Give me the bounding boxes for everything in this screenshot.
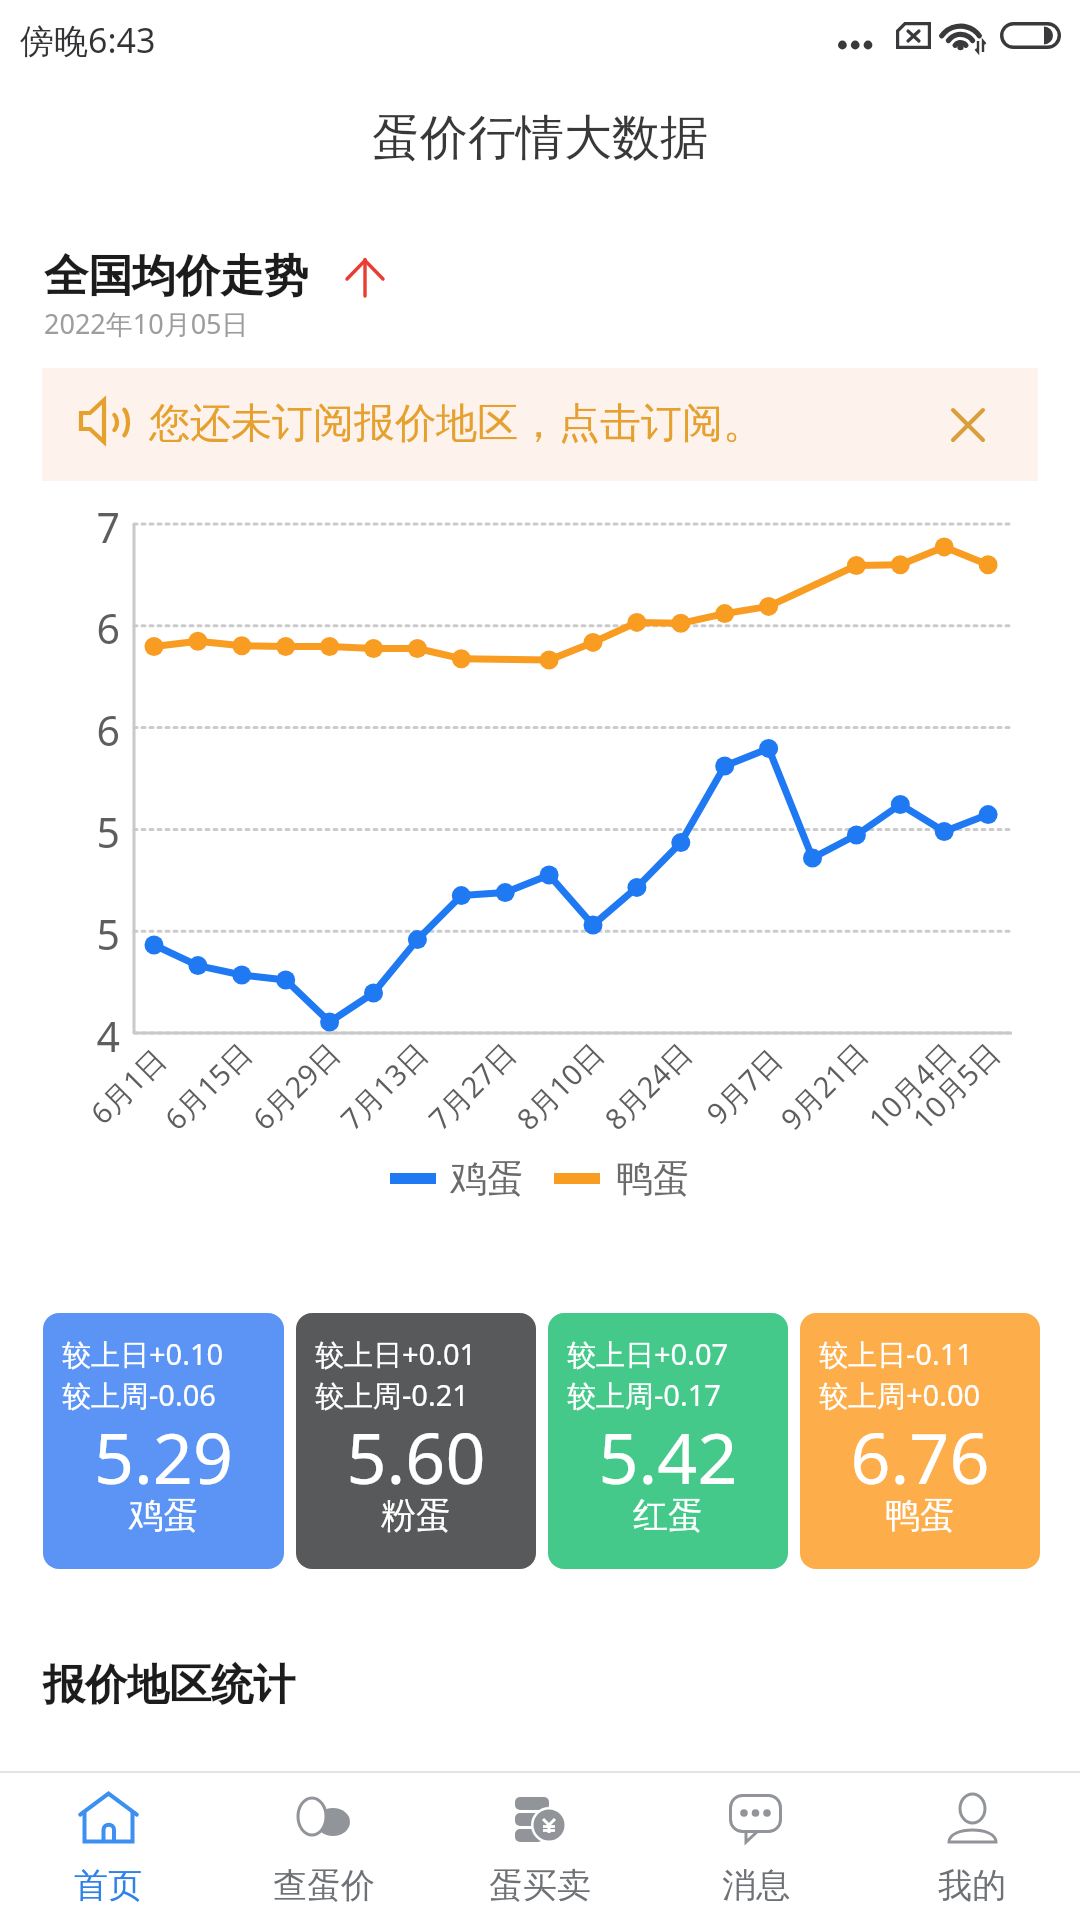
staticText: 10月4日: [860, 1034, 964, 1138]
staticText: 较上周-0.17: [567, 1375, 721, 1415]
staticText: 查蛋价: [273, 1864, 375, 1907]
button[interactable]: 较上日+0.07: [548, 1313, 788, 1569]
staticText: 9月21日: [772, 1034, 876, 1138]
button[interactable]: 蛋买卖: [432, 1773, 648, 1907]
staticText: 5: [76, 804, 120, 860]
staticText: 8月24日: [596, 1034, 700, 1138]
staticText: 6: [76, 600, 120, 656]
staticText: 较上日-0.11: [819, 1334, 973, 1374]
button[interactable]: 查蛋价: [216, 1773, 432, 1907]
staticText: 6: [76, 702, 120, 758]
button[interactable]: 较上日-0.11: [800, 1313, 1040, 1569]
staticText: 蛋价行情大数据: [372, 108, 708, 168]
staticText: 5.42: [548, 1409, 788, 1504]
staticText: 较上周+0.00: [819, 1375, 981, 1415]
staticText: 6月15日: [156, 1034, 260, 1138]
staticText: 8月10日: [508, 1034, 612, 1138]
staticText: 9月7日: [697, 1039, 791, 1133]
staticText: 2022年10月05日: [44, 305, 249, 342]
button[interactable]: 我的: [864, 1773, 1080, 1907]
staticText: 我的: [938, 1864, 1006, 1907]
staticText: 较上周-0.06: [62, 1375, 216, 1415]
staticText: 5.60: [296, 1409, 536, 1504]
staticText: 报价地区统计: [43, 1659, 295, 1712]
staticText: 您还未订阅报价地区，点击订阅。: [149, 398, 764, 450]
staticText: 鸭蛋: [800, 1493, 1040, 1537]
staticText: 5.29: [43, 1409, 284, 1504]
staticText: 红蛋: [548, 1493, 788, 1537]
staticText: 蛋买卖: [489, 1864, 591, 1907]
button[interactable]: 较上日+0.01: [296, 1313, 536, 1569]
staticText: 6.76: [800, 1409, 1040, 1504]
staticText: 傍晚6:43: [20, 17, 156, 63]
staticText: 较上周-0.21: [315, 1375, 469, 1415]
staticText: 5: [76, 906, 120, 962]
staticText: 消息: [722, 1864, 790, 1907]
button[interactable]: 您还未订阅报价地区，点击订阅。: [42, 368, 1038, 481]
staticText: 较上日+0.07: [567, 1334, 729, 1374]
button[interactable]: 首页: [0, 1773, 216, 1907]
button[interactable]: 消息: [648, 1773, 864, 1907]
staticText: 全国均价走势: [44, 249, 308, 304]
staticText: 较上日+0.01: [315, 1334, 477, 1374]
staticText: 首页: [74, 1864, 142, 1907]
staticText: 7月13日: [332, 1034, 436, 1138]
staticText: 鸡蛋: [43, 1493, 284, 1537]
staticText: 7月27日: [420, 1034, 524, 1138]
button[interactable]: 较上日+0.10: [43, 1313, 284, 1569]
staticText: 10月5日: [904, 1034, 1008, 1138]
staticText: 7: [76, 499, 120, 555]
staticText: 6月1日: [81, 1039, 175, 1133]
button[interactable]: 关闭: [938, 395, 998, 455]
staticText: 鸭蛋: [616, 1155, 690, 1202]
staticText: 较上日+0.10: [62, 1334, 224, 1374]
staticText: 粉蛋: [296, 1493, 536, 1537]
staticText: 4: [76, 1008, 120, 1064]
staticText: 6月29日: [244, 1034, 348, 1138]
staticText: 鸡蛋: [450, 1155, 524, 1202]
